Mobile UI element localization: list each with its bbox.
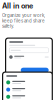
- staticText: Organize your work, keep files and share…: [2, 13, 45, 29]
- staticText: All in one: [2, 1, 33, 10]
